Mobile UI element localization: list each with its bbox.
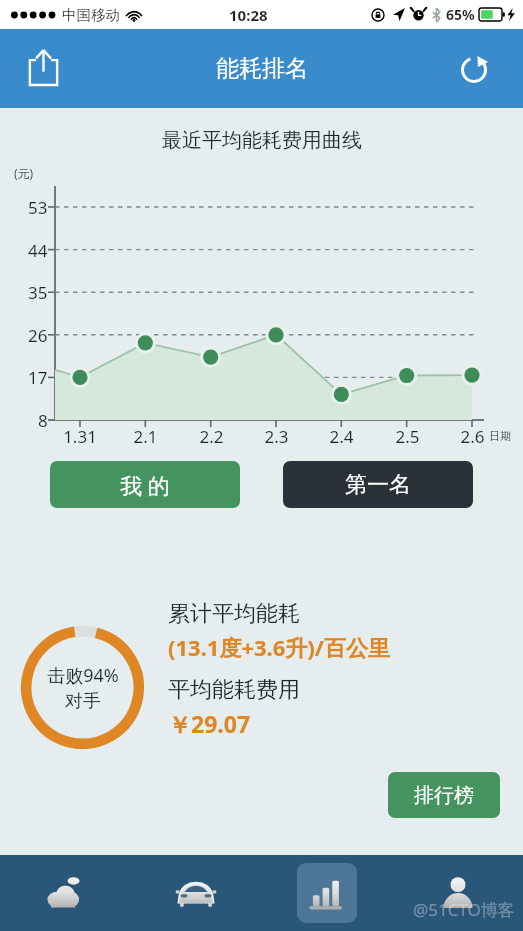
button[interactable]: 第一名: [283, 461, 473, 508]
staticText: 击败94%: [47, 663, 119, 688]
staticText: 2.4: [329, 425, 354, 448]
staticText: 35: [28, 281, 48, 304]
staticText: ￥29.07: [168, 708, 251, 739]
staticText: 中国移动: [62, 6, 120, 24]
staticText: 53: [28, 196, 48, 219]
staticText: 排行榜: [414, 783, 474, 808]
staticText: 2.2: [199, 425, 224, 448]
staticText: @51CTO博客: [413, 898, 515, 921]
staticText: 2.3: [264, 425, 289, 448]
button[interactable]: Refresh: [448, 42, 500, 94]
staticText: 65%: [446, 5, 475, 24]
staticText: 我 的: [120, 470, 170, 500]
staticText: 10:28: [229, 5, 268, 25]
staticText: 1.31: [63, 425, 97, 448]
staticText: 2.1: [133, 425, 158, 448]
staticText: 最近平均能耗费用曲线: [162, 128, 362, 153]
staticText: 第一名: [345, 471, 411, 499]
button[interactable]: Profile: [392, 855, 523, 931]
staticText: 能耗排名: [216, 54, 308, 83]
staticText: 日期: [489, 429, 511, 443]
staticText: 累计平均能耗: [168, 600, 300, 628]
staticText: (13.1度+3.6升)/百公里: [168, 632, 390, 662]
staticText: 对手: [65, 690, 101, 713]
staticText: 平均能耗费用: [168, 676, 300, 704]
staticText: 26: [28, 324, 48, 347]
staticText: (元): [14, 165, 34, 181]
button[interactable]: 我 的: [50, 461, 240, 508]
button[interactable]: Statistics: [261, 855, 392, 931]
staticText: 2.5: [395, 425, 420, 448]
button[interactable]: Car: [130, 855, 261, 931]
button[interactable]: Share: [16, 40, 70, 94]
staticText: 44: [28, 239, 48, 262]
staticText: 2.6: [460, 425, 485, 448]
button[interactable]: Weather: [0, 855, 130, 931]
staticText: 8: [38, 409, 48, 432]
staticText: 17: [28, 366, 48, 389]
button[interactable]: 排行榜: [388, 772, 500, 818]
